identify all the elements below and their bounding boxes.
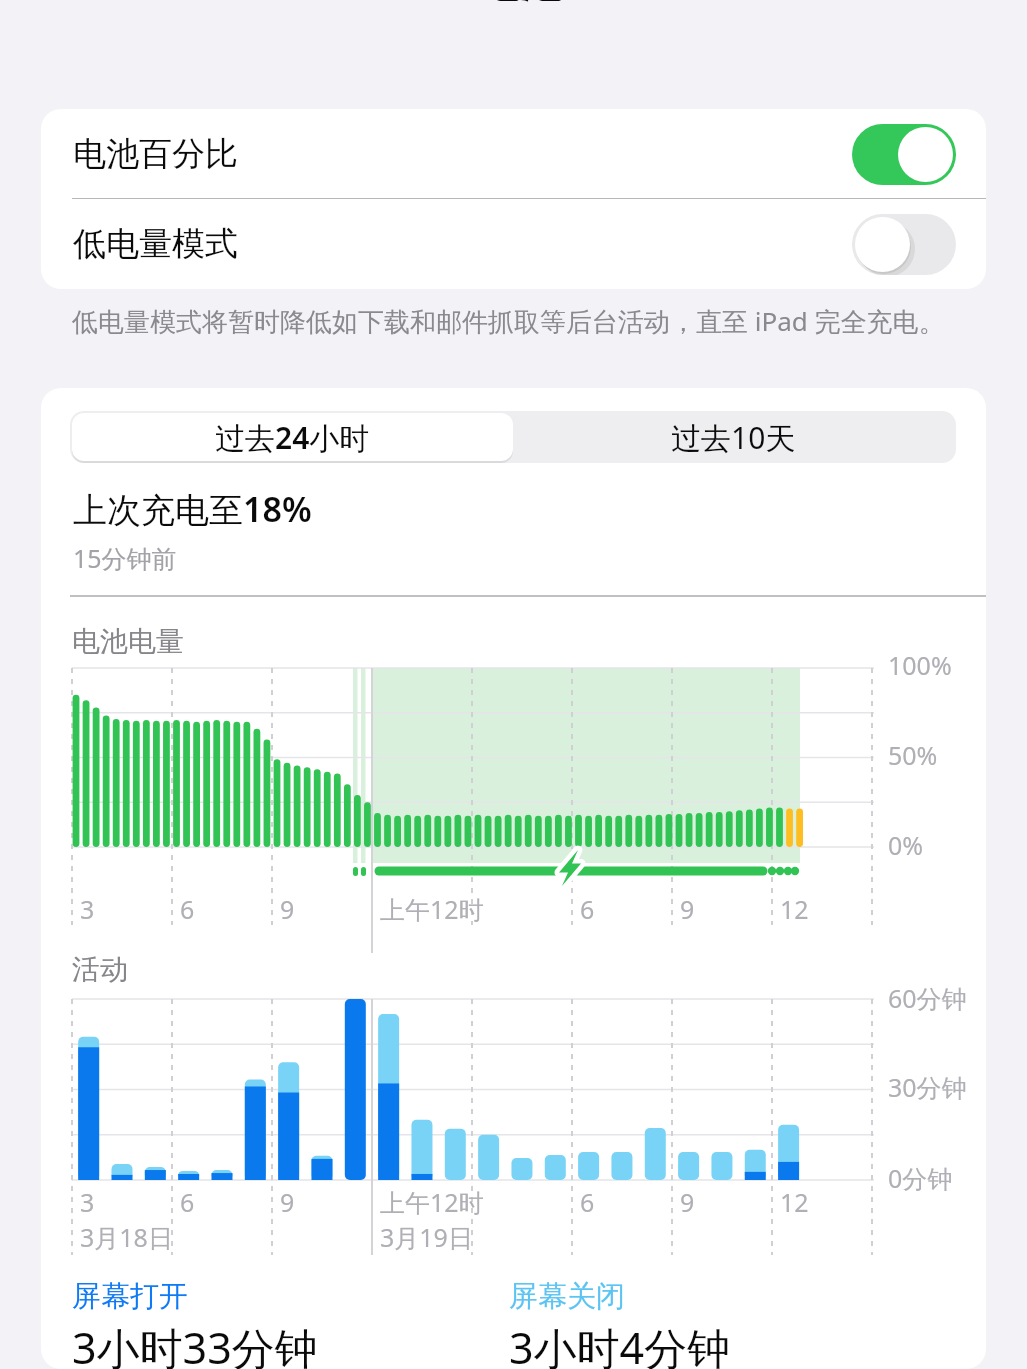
staticText: 30分钟 [888, 1070, 967, 1104]
staticText: 3月19日 [380, 1220, 473, 1254]
staticText: 低电量模式将暂时降低如下载和邮件抓取等后台活动，直至 iPad 完全充电。 [72, 303, 945, 339]
button[interactable]: 低电量模式 [41, 199, 986, 289]
staticText: 6 [180, 892, 195, 926]
staticText: 60分钟 [888, 981, 967, 1015]
staticText: 3 [80, 892, 95, 926]
staticText: 12 [780, 892, 809, 926]
staticText: 3月18日 [80, 1220, 173, 1254]
staticText: 电池电量 [72, 624, 184, 659]
staticText: 电池 [478, 0, 562, 9]
staticText: 6 [580, 892, 595, 926]
staticText: 6 [180, 1185, 195, 1219]
staticText: 0分钟 [888, 1161, 953, 1195]
staticText: 6 [580, 1185, 595, 1219]
button[interactable]: 过去10天 [513, 413, 954, 461]
staticText: 0% [888, 828, 924, 862]
staticText: 屏幕关闭 [509, 1278, 625, 1315]
staticText: 9 [280, 892, 295, 926]
staticText: 100% [888, 648, 952, 682]
button[interactable]: 电池百分比 [41, 109, 986, 199]
staticText: 电池百分比 [73, 133, 238, 175]
button[interactable] [852, 124, 956, 185]
staticText: 50% [888, 738, 938, 772]
button[interactable]: 过去24小时 [72, 413, 513, 461]
staticText: 屏幕打开 [72, 1278, 188, 1315]
staticText: 15分钟前 [73, 541, 177, 575]
staticText: 12 [780, 1185, 809, 1219]
staticText: 上次充电至18% [73, 486, 312, 532]
staticText: 上午12时 [380, 1185, 484, 1219]
staticText: 过去24小时 [215, 417, 370, 458]
staticText: 9 [680, 892, 695, 926]
staticText: 低电量模式 [73, 223, 238, 265]
button[interactable] [852, 214, 956, 275]
staticText: 3 [80, 1185, 95, 1219]
staticText: 上午12时 [380, 892, 484, 926]
staticText: 过去10天 [671, 417, 796, 458]
staticText: 9 [280, 1185, 295, 1219]
staticText: 3小时33分钟 [72, 1318, 318, 1369]
staticText: 3小时4分钟 [509, 1318, 731, 1369]
staticText: 活动 [72, 952, 128, 987]
staticText: 9 [680, 1185, 695, 1219]
